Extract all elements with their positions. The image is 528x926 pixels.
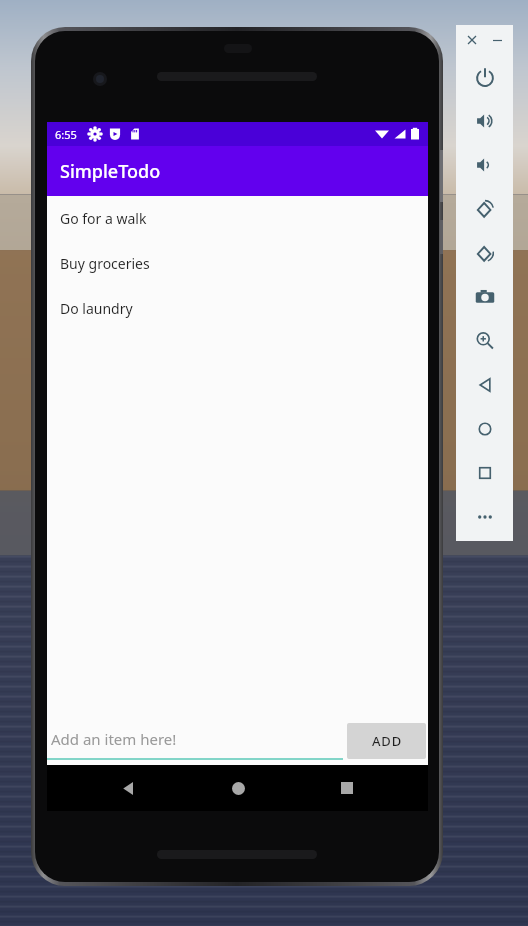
button[interactable]: Recent apps (330, 771, 364, 805)
button[interactable]: Back (456, 363, 513, 407)
staticText: Go for a walk (60, 209, 147, 228)
staticText: Buy groceries (60, 254, 150, 273)
staticText: 6:55 (55, 127, 77, 142)
button[interactable]: Volume up (456, 99, 513, 143)
button[interactable]: Take screenshot (456, 275, 513, 319)
button[interactable]: Overview (456, 451, 513, 495)
button[interactable]: Close (463, 31, 481, 49)
button[interactable]: Rotate left (456, 187, 513, 231)
button[interactable]: Rotate right (456, 231, 513, 275)
button[interactable]: Volume down (456, 143, 513, 187)
button[interactable]: Back (111, 771, 145, 805)
button[interactable]: Add an item here! (47, 717, 343, 765)
button[interactable]: Home (456, 407, 513, 451)
staticText: ADD (372, 732, 402, 750)
button[interactable]: Power (456, 55, 513, 99)
staticText: SimpleTodo (60, 159, 161, 184)
button[interactable]: Go for a walk (47, 196, 428, 241)
staticText: Add an item here! (51, 729, 177, 749)
button[interactable]: Minimize (488, 31, 506, 49)
button[interactable]: Buy groceries (47, 241, 428, 286)
button[interactable]: More (456, 495, 513, 539)
button[interactable]: Zoom (456, 319, 513, 363)
button[interactable]: Do laundry (47, 286, 428, 331)
button[interactable]: Home (221, 771, 255, 805)
staticText: Do laundry (60, 299, 133, 318)
button[interactable]: ADD (347, 723, 426, 759)
